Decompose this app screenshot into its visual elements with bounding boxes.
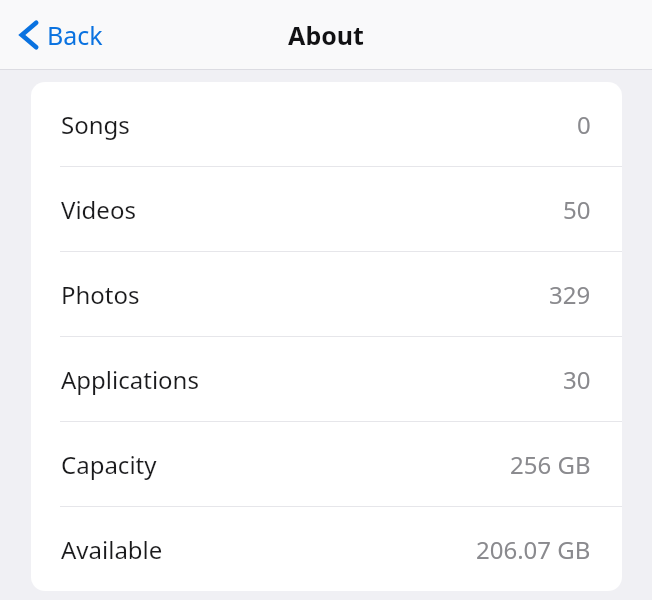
staticText: Photos	[61, 278, 140, 311]
staticText: 256 GB	[510, 448, 591, 481]
staticText: Available	[61, 533, 163, 566]
button[interactable]: Available	[31, 507, 622, 591]
staticText: Videos	[61, 193, 136, 226]
staticText: Capacity	[61, 448, 157, 481]
staticText: Back	[47, 18, 103, 52]
button[interactable]: Songs	[31, 82, 622, 166]
staticText: 50	[563, 193, 591, 226]
button[interactable]: Applications	[31, 337, 622, 421]
button[interactable]: Capacity	[31, 422, 622, 506]
other: Back	[19, 21, 39, 49]
staticText: Songs	[61, 108, 130, 141]
staticText: 206.07 GB	[476, 533, 591, 566]
staticText: 329	[549, 278, 591, 311]
staticText: 30	[563, 363, 591, 396]
staticText: 0	[577, 108, 591, 141]
button[interactable]: Back	[14, 12, 108, 58]
staticText: Applications	[61, 363, 199, 396]
button[interactable]: Photos	[31, 252, 622, 336]
button[interactable]: Videos	[31, 167, 622, 251]
staticText: About	[0, 18, 652, 52]
